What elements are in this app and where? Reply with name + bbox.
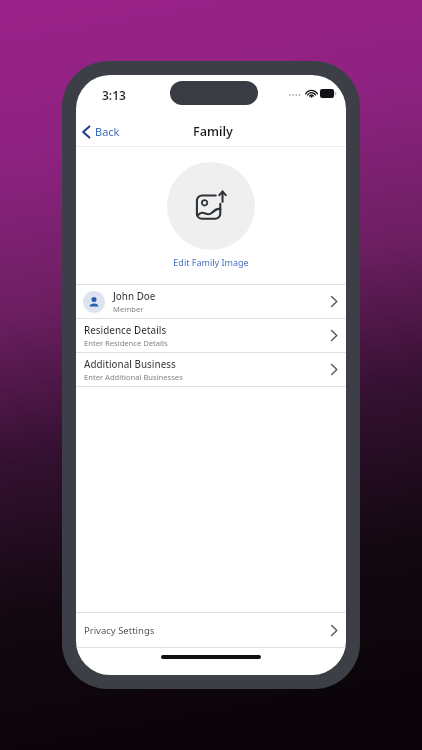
staticText: Privacy Settings xyxy=(84,624,155,637)
staticText: John Doe xyxy=(113,290,156,303)
button[interactable]: Residence Details xyxy=(76,319,346,352)
button[interactable]: Back xyxy=(76,120,128,143)
staticText: Back xyxy=(95,124,120,139)
button[interactable]: Edit Family Image xyxy=(173,256,249,268)
staticText: 3:13 xyxy=(102,87,126,103)
staticText: Member xyxy=(113,304,144,314)
staticText: Enter Residence Details xyxy=(84,338,168,348)
staticText: Residence Details xyxy=(84,324,167,337)
button[interactable]: John Doe xyxy=(76,285,346,318)
staticText: Family xyxy=(193,123,233,140)
staticText: Enter Additional Businesses xyxy=(84,372,183,382)
staticText: Additional Business xyxy=(84,358,176,371)
button[interactable]: Additional Business xyxy=(76,353,346,386)
button[interactable]: Privacy Settings xyxy=(76,613,346,647)
button[interactable]: Edit Family Image xyxy=(167,162,255,250)
